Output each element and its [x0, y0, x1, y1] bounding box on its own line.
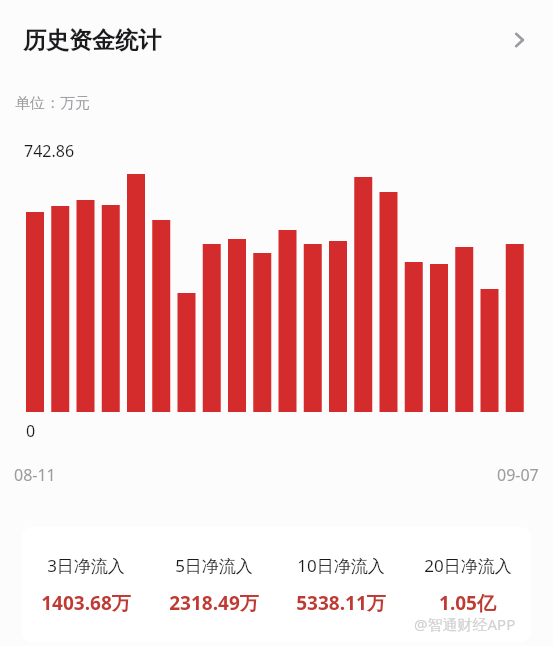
- button[interactable]: 查看更多: [495, 16, 543, 64]
- staticText: 单位：万元: [15, 94, 90, 113]
- staticText: 5338.11万: [296, 590, 386, 616]
- staticText: 20日净流入: [424, 554, 512, 577]
- staticText: 742.86: [24, 140, 75, 162]
- staticText: 1403.68万: [41, 590, 131, 616]
- staticText: 5日净流入: [175, 554, 253, 577]
- button[interactable]: 历史资金统计: [0, 0, 553, 80]
- staticText: 0: [26, 420, 36, 442]
- staticText: 历史资金统计: [23, 26, 161, 55]
- button[interactable]: 10日净流入: [277, 527, 404, 642]
- staticText: 3日净流入: [47, 554, 125, 577]
- staticText: 2318.49万: [169, 590, 259, 616]
- button[interactable]: 3日净流入: [22, 527, 150, 642]
- staticText: @智通财经APP: [414, 614, 516, 634]
- staticText: 10日净流入: [297, 554, 385, 577]
- button[interactable]: 20日净流入: [404, 527, 531, 642]
- button[interactable]: 3日净流入: [22, 527, 531, 642]
- staticText: 1.05亿: [439, 590, 496, 616]
- staticText: 08-11: [14, 464, 56, 486]
- button[interactable]: 5日净流入: [150, 527, 277, 642]
- staticText: 09-07: [497, 464, 539, 486]
